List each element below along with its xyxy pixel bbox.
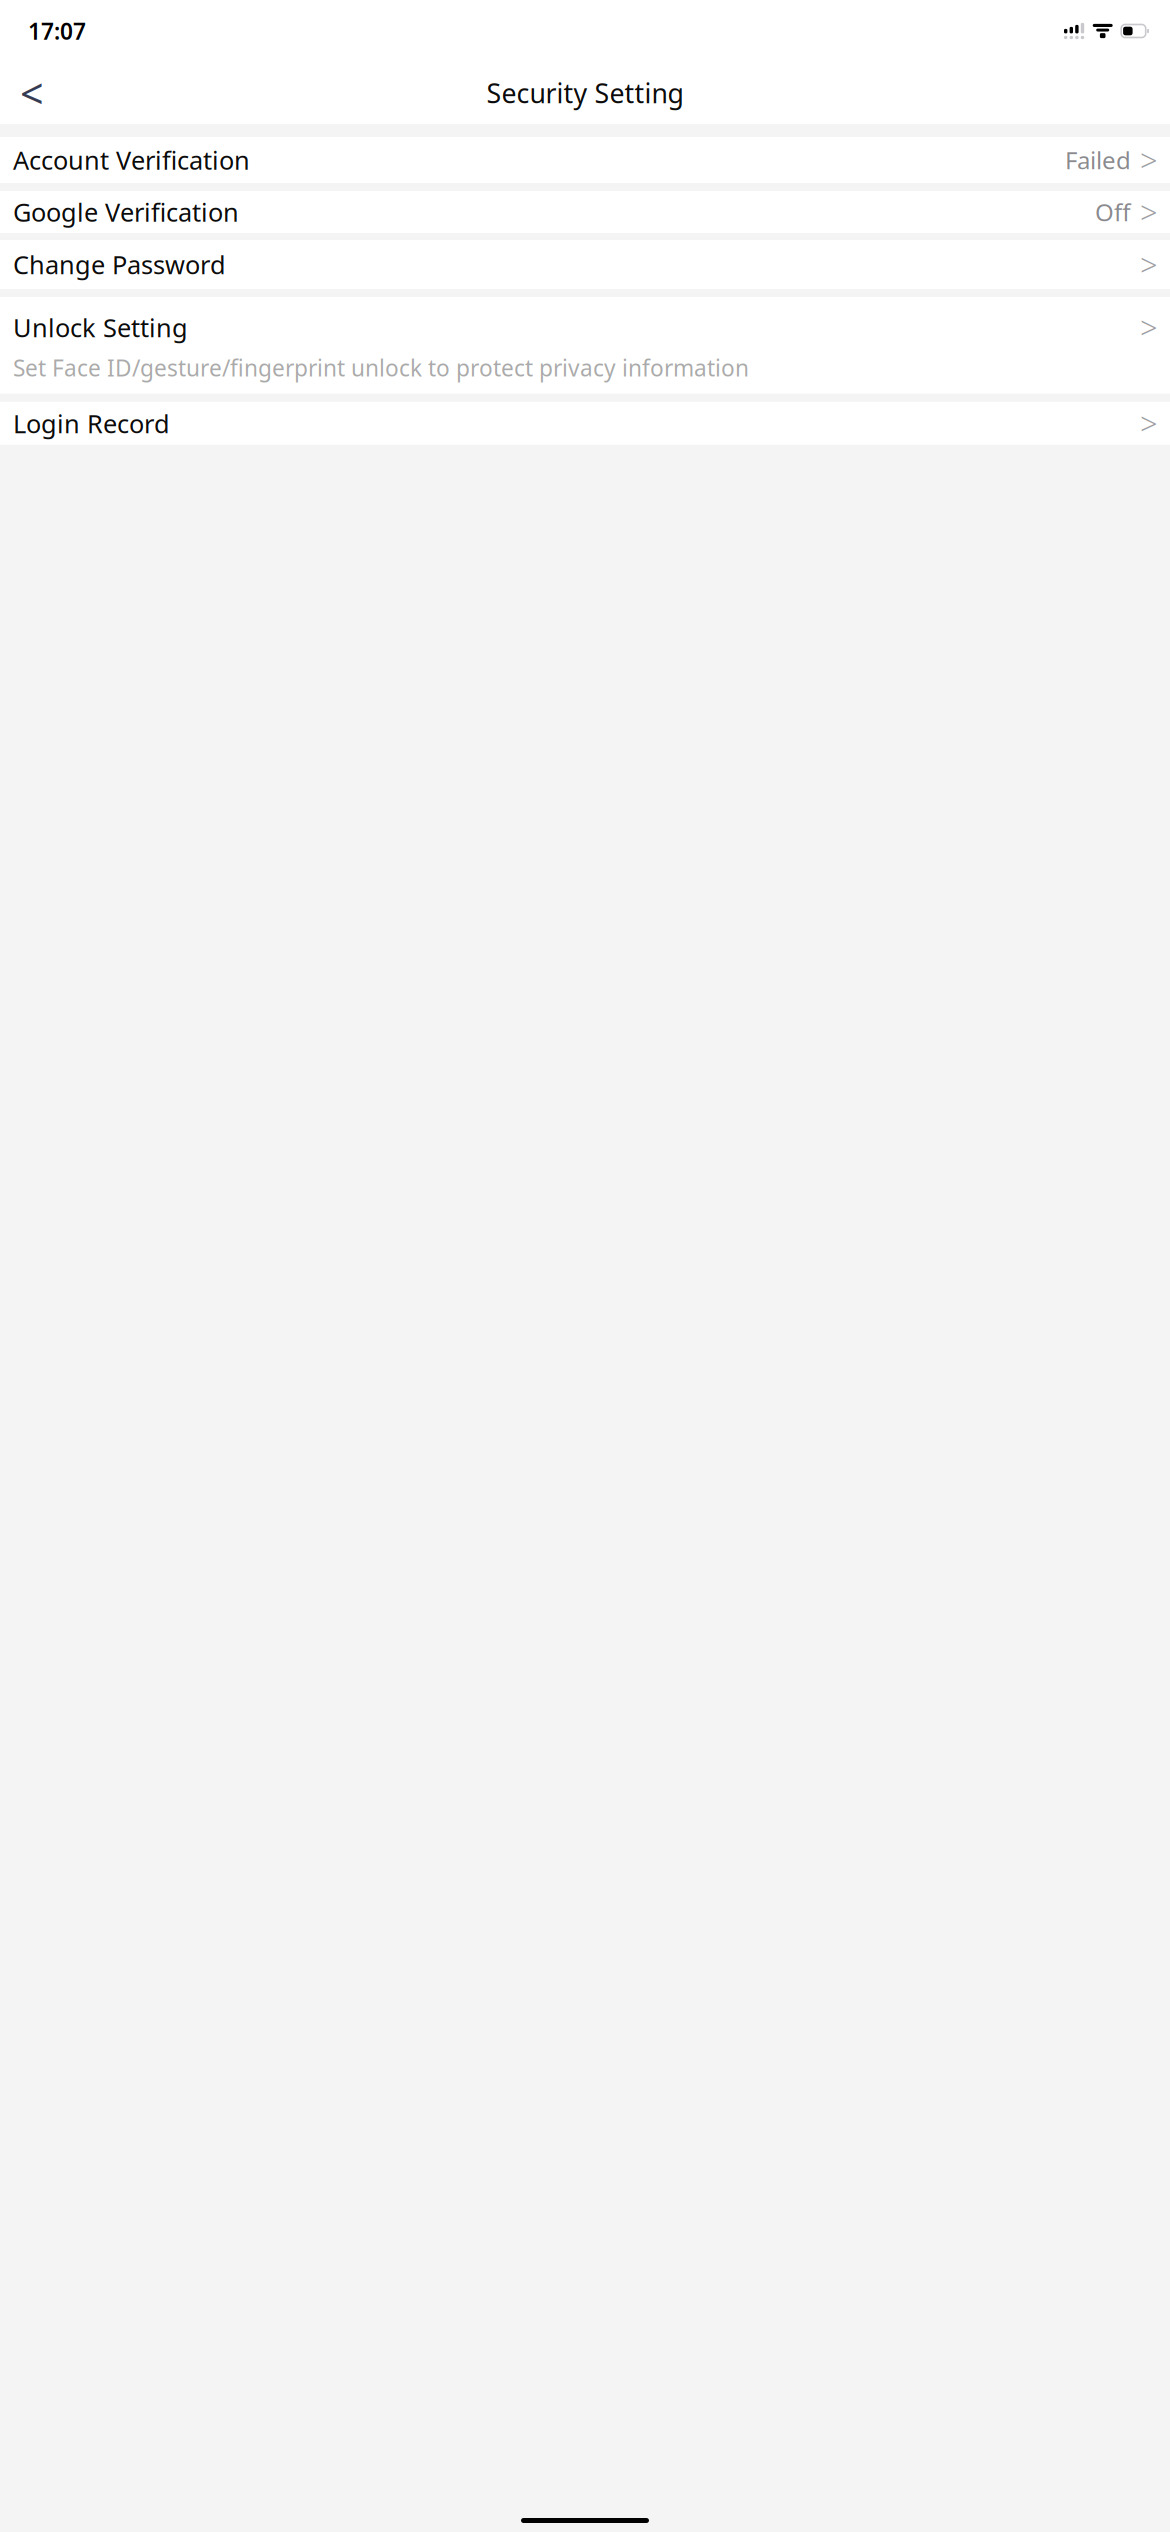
staticText: 17:07 bbox=[28, 16, 86, 46]
button[interactable]: Login Record bbox=[0, 402, 1170, 445]
button[interactable]: Account Verification bbox=[0, 137, 1170, 183]
staticText: < bbox=[20, 66, 44, 120]
staticText: Security Setting bbox=[486, 75, 683, 111]
button[interactable]: Change Password bbox=[0, 240, 1170, 289]
button[interactable]: Back bbox=[4, 70, 60, 116]
staticText: Unlock Setting bbox=[13, 310, 188, 344]
button[interactable]: Google Verification bbox=[0, 191, 1170, 233]
staticText: > bbox=[1140, 192, 1158, 232]
staticText: > bbox=[1140, 307, 1158, 348]
staticText: Change Password bbox=[13, 248, 226, 281]
staticText: > bbox=[1140, 244, 1158, 285]
staticText: Set Face ID/gesture/fingerprint unlock t… bbox=[13, 353, 749, 383]
staticText: Failed bbox=[1065, 144, 1131, 176]
staticText: Account Verification bbox=[13, 143, 250, 177]
staticText: Off bbox=[1095, 196, 1131, 228]
staticText: Google Verification bbox=[13, 195, 239, 229]
staticText: > bbox=[1140, 140, 1158, 180]
staticText: > bbox=[1140, 403, 1158, 444]
staticText: Login Record bbox=[13, 406, 170, 440]
button[interactable]: Unlock Setting bbox=[0, 297, 1170, 394]
